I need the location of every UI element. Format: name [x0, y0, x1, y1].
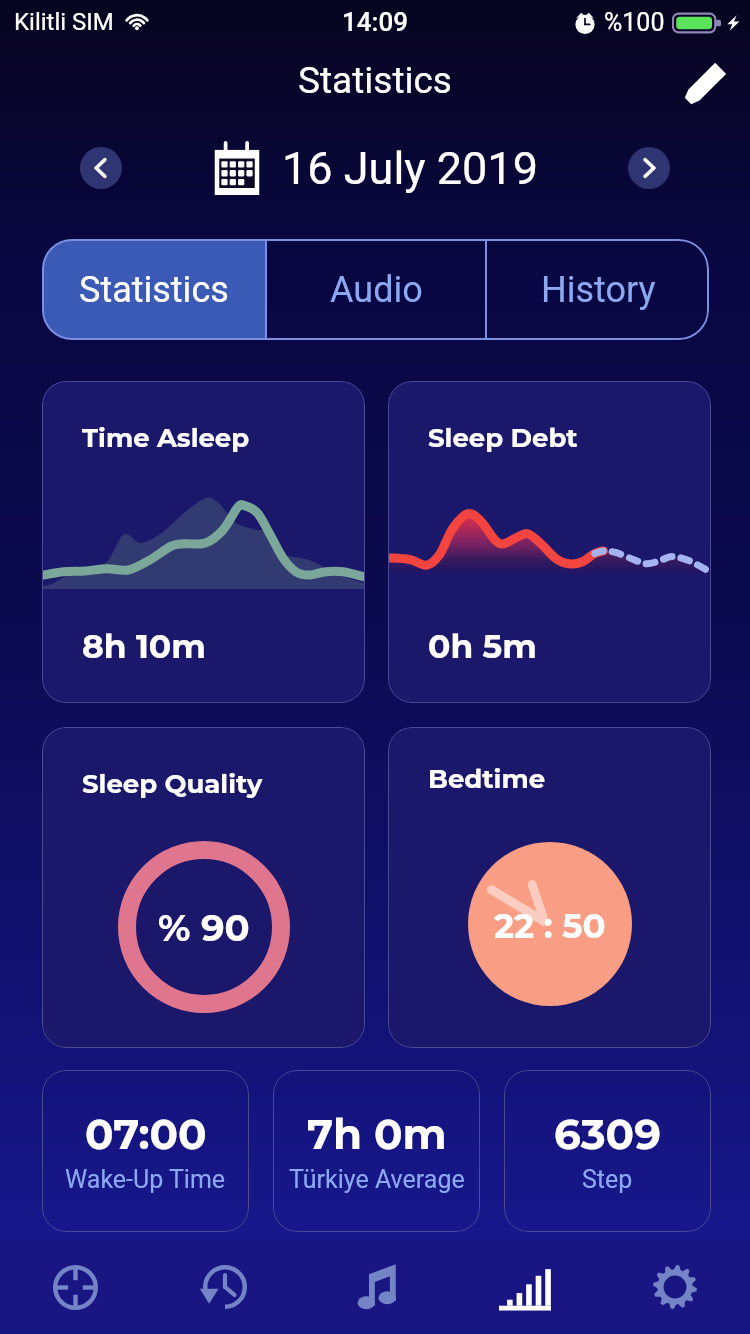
button[interactable]: Settings: [600, 1240, 750, 1334]
staticText: 22 : 50: [494, 905, 606, 946]
button[interactable]: History: [150, 1240, 300, 1334]
staticText: Time Asleep: [82, 422, 250, 454]
button[interactable]: Next day: [628, 147, 670, 189]
staticText: 16 July 2019: [282, 142, 538, 195]
staticText: Step: [582, 1165, 633, 1194]
staticText: 7h 0m: [307, 1108, 447, 1159]
staticText: Statistics: [298, 59, 452, 102]
button[interactable]: Audio: [265, 239, 487, 340]
button[interactable]: Sleep Quality: [42, 727, 365, 1048]
button[interactable]: Statistics: [450, 1240, 600, 1334]
staticText: History: [541, 269, 656, 311]
staticText: Sleep Debt: [428, 422, 578, 454]
staticText: Statistics: [79, 269, 229, 311]
staticText: Türkiye Average: [289, 1165, 465, 1194]
staticText: Sleep Quality: [82, 768, 263, 800]
staticText: 0h 5m: [428, 626, 537, 666]
button[interactable]: Bedtime: [388, 727, 711, 1048]
staticText: %100: [604, 8, 665, 37]
staticText: Kilitli SIM: [14, 8, 114, 36]
staticText: 8h 10m: [82, 626, 206, 666]
staticText: 07:00: [85, 1108, 207, 1159]
button[interactable]: 07:00: [42, 1070, 249, 1232]
staticText: Wake-Up Time: [65, 1165, 226, 1194]
button[interactable]: History: [487, 239, 709, 340]
button[interactable]: 6309: [504, 1070, 711, 1232]
button[interactable]: Statistics: [42, 239, 265, 340]
button[interactable]: Sleep Debt: [388, 381, 711, 703]
button[interactable]: Previous day: [80, 147, 122, 189]
staticText: % 90: [158, 905, 250, 950]
staticText: 6309: [554, 1108, 661, 1159]
button[interactable]: Music: [300, 1240, 450, 1334]
button[interactable]: 7h 0m: [273, 1070, 480, 1232]
button[interactable]: Edit: [676, 55, 734, 113]
staticText: Bedtime: [428, 763, 546, 795]
button[interactable]: Time Asleep: [42, 381, 365, 703]
button[interactable]: Alarm: [0, 1240, 150, 1334]
staticText: 14:09: [342, 7, 408, 37]
staticText: Audio: [330, 269, 423, 311]
